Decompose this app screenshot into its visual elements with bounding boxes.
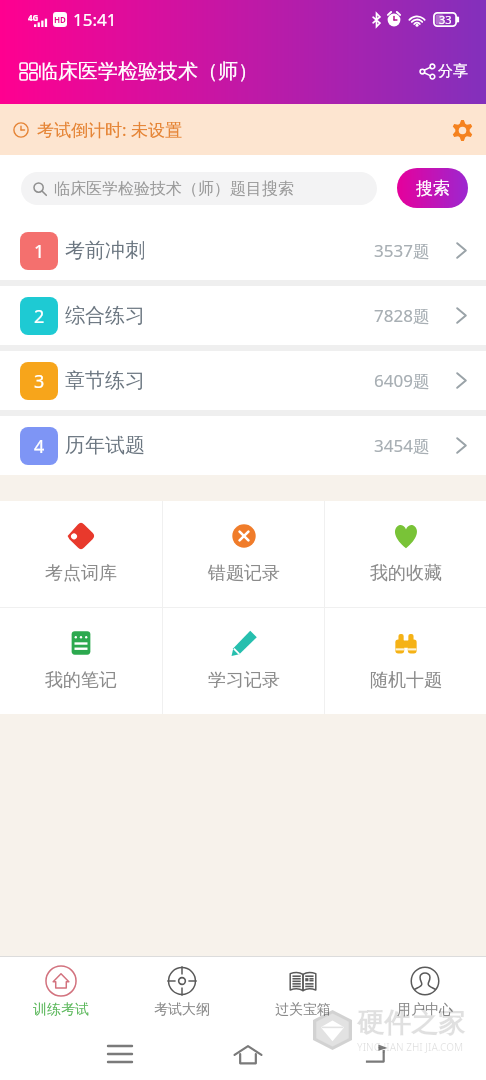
staticText: 错题记录 <box>208 562 280 585</box>
button[interactable]: 学习记录 <box>163 608 324 714</box>
staticText: HD <box>54 14 66 25</box>
button[interactable]: 考点词库 <box>0 501 162 607</box>
button[interactable]: 2 <box>0 286 486 345</box>
button[interactable]: 我的笔记 <box>0 608 162 714</box>
staticText: 6409题 <box>374 369 430 392</box>
button[interactable]: 错题记录 <box>163 501 324 607</box>
staticText: 过关宝箱 <box>275 1001 331 1019</box>
staticText: 临床医学检验技术（师） <box>38 59 258 84</box>
staticText: 临床医学检验技术（师）题目搜索 <box>54 179 294 199</box>
staticText: YING JIAN ZHI JIA.COM <box>357 1040 464 1054</box>
button[interactable]: 过关宝箱 <box>242 957 364 1027</box>
staticText: 33 <box>439 12 452 27</box>
staticText: 我的笔记 <box>45 669 117 692</box>
button[interactable]: 1 <box>0 221 486 280</box>
button[interactable]: 搜索 <box>397 168 468 208</box>
staticText: 训练考试 <box>33 1001 89 1019</box>
staticText: 15:41 <box>73 8 117 31</box>
button[interactable]: 考试大纲 <box>121 957 242 1027</box>
button[interactable]: Back <box>356 1034 396 1074</box>
staticText: 考前冲刺 <box>65 238 145 263</box>
staticText: 章节练习 <box>65 368 145 393</box>
button[interactable]: 4 <box>0 416 486 475</box>
staticText: 考试大纲 <box>154 1001 210 1019</box>
button[interactable]: 随机十题 <box>325 608 486 714</box>
staticText: 随机十题 <box>370 669 442 692</box>
staticText: 学习记录 <box>208 669 280 692</box>
button[interactable]: 临床医学检验技术（师）题目搜索 <box>21 172 377 205</box>
staticText: 4G <box>28 12 39 23</box>
button[interactable]: 训练考试 <box>0 957 121 1027</box>
staticText: 7828题 <box>374 304 430 327</box>
staticText: 历年试题 <box>65 433 145 458</box>
staticText: 2 <box>34 304 45 329</box>
staticText: 3454题 <box>374 434 430 457</box>
staticText: 硬件之家 <box>357 1006 465 1040</box>
button[interactable]: Home <box>226 1032 270 1076</box>
staticText: 考试倒计时: 未设置 <box>37 118 182 141</box>
button[interactable]: 分享 <box>416 54 472 89</box>
staticText: 分享 <box>438 62 468 81</box>
staticText: 3537题 <box>374 239 430 262</box>
staticText: 综合练习 <box>65 303 145 328</box>
staticText: 我的收藏 <box>370 562 442 585</box>
staticText: 考点词库 <box>45 562 117 585</box>
button[interactable]: 3 <box>0 351 486 410</box>
staticText: 搜索 <box>416 178 450 199</box>
button[interactable]: 用户中心 <box>364 957 486 1027</box>
button[interactable]: Recents <box>100 1034 140 1074</box>
staticText: 1 <box>34 239 45 264</box>
button[interactable]: 我的收藏 <box>325 501 486 607</box>
staticText: 用户中心 <box>397 1001 453 1019</box>
button[interactable]: Settings <box>445 113 479 147</box>
staticText: 3 <box>34 369 45 394</box>
staticText: 4 <box>34 434 45 459</box>
